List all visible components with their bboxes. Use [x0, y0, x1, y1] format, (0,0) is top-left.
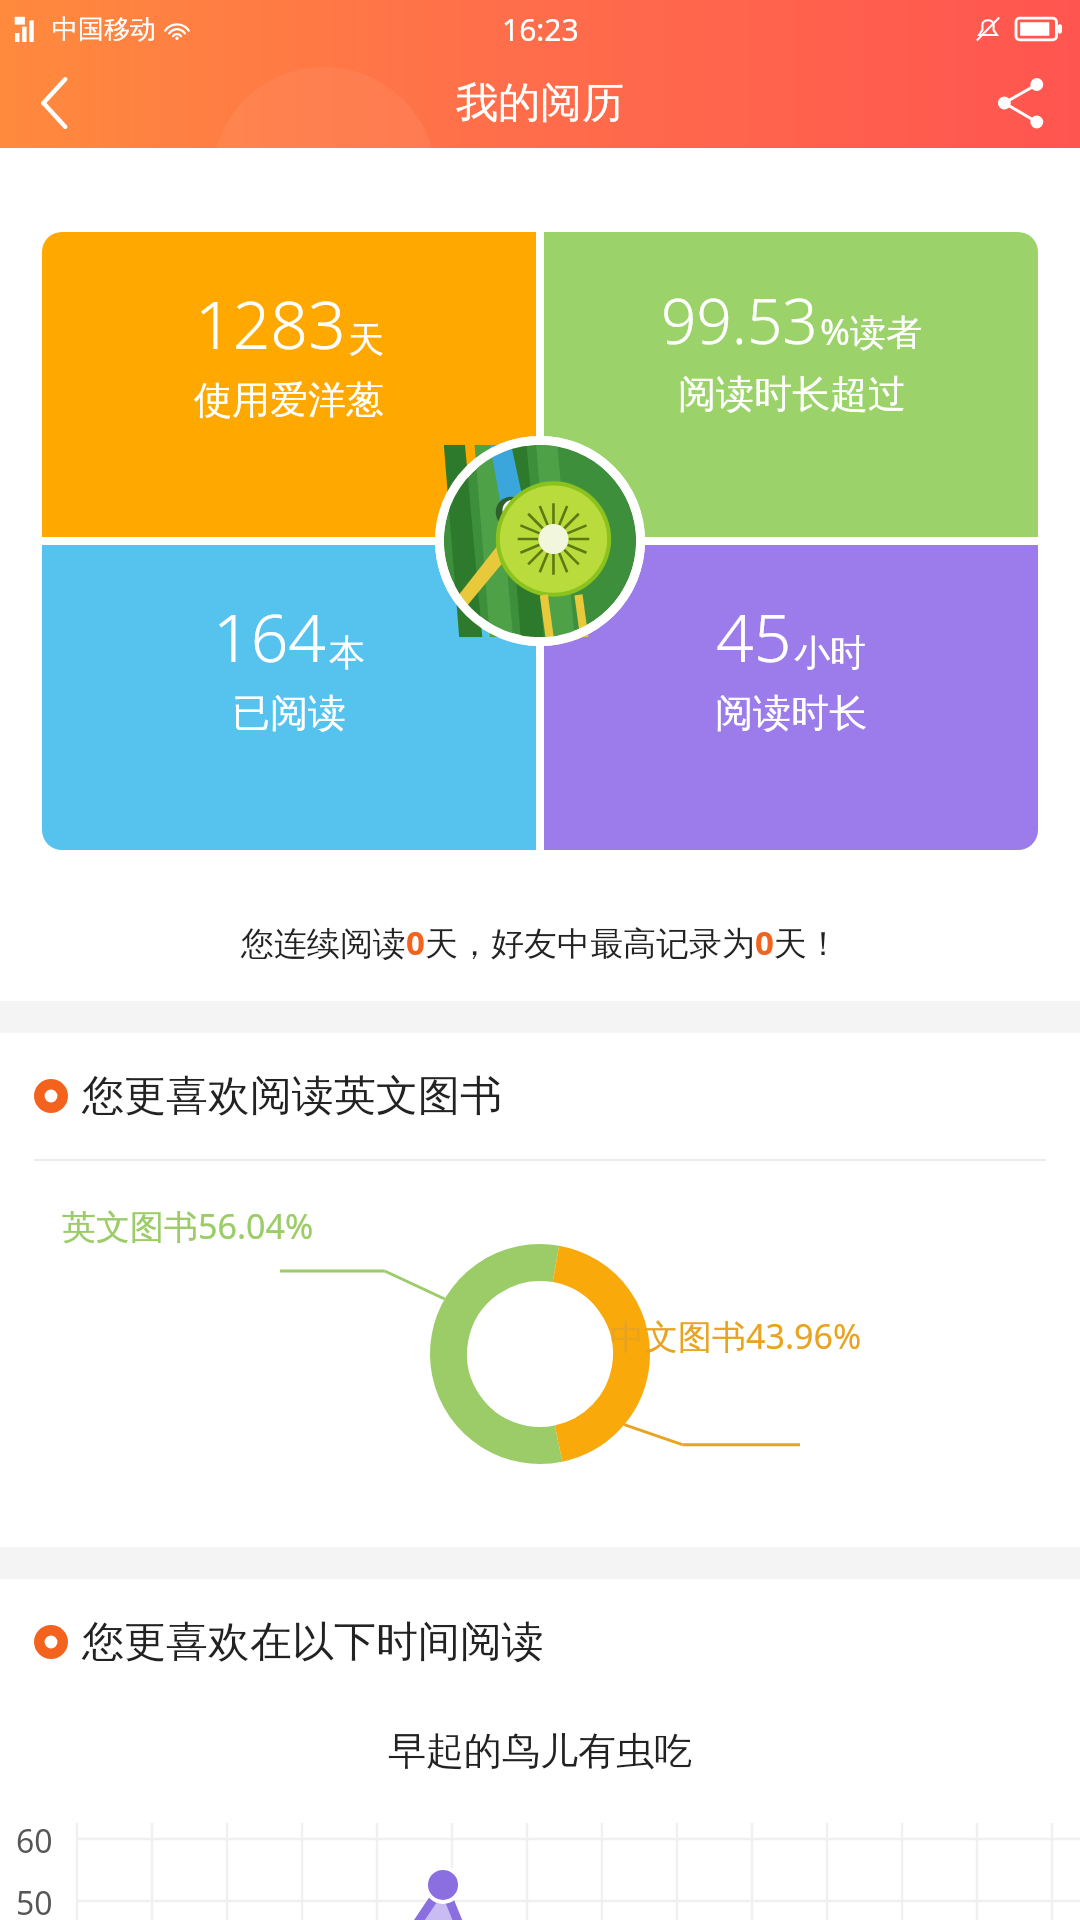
staticText: 已阅读: [232, 689, 346, 737]
button[interactable]: Avatar: [435, 436, 645, 646]
staticText: 小时: [794, 630, 866, 675]
button[interactable]: 您更喜欢阅读英文图书: [0, 1033, 1080, 1159]
staticText: 16:23: [502, 9, 579, 50]
staticText: 英文图书56.04%: [62, 1203, 314, 1249]
staticText: 使用爱洋葱: [194, 376, 384, 424]
button[interactable]: 45: [544, 545, 1038, 850]
staticText: 45: [716, 591, 792, 681]
staticText: 早起的鸟儿有虫吃: [388, 1727, 692, 1775]
staticText: 我的阅历: [456, 77, 624, 130]
staticText: 阅读时长超过: [678, 370, 906, 418]
staticText: 99.53: [661, 278, 818, 362]
staticText: 您更喜欢在以下时间阅读: [82, 1616, 544, 1669]
staticText: 本: [329, 630, 365, 675]
staticText: 60: [16, 1819, 53, 1863]
staticText: 中国移动: [52, 13, 156, 46]
staticText: 50: [16, 1881, 53, 1920]
staticText: 阅读时长: [715, 689, 867, 737]
staticText: 天: [348, 317, 384, 362]
button[interactable]: Back: [0, 58, 110, 148]
button[interactable]: 164: [42, 545, 536, 850]
staticText: %读者: [820, 307, 922, 356]
staticText: 中文图书43.96%: [610, 1313, 862, 1359]
staticText: 164: [213, 591, 327, 681]
button[interactable]: 99.53: [544, 232, 1038, 537]
staticText: 您连续阅读0天，好友中最高记录为0天！: [241, 920, 840, 965]
staticText: 1283: [195, 278, 346, 368]
staticText: 您更喜欢阅读英文图书: [82, 1070, 502, 1123]
button[interactable]: Share: [960, 58, 1080, 148]
button[interactable]: 1283: [42, 232, 536, 537]
button[interactable]: 您更喜欢在以下时间阅读: [0, 1579, 1080, 1705]
